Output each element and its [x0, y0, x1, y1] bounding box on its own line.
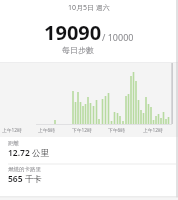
staticText: 12.72 公里 [8, 147, 50, 159]
button[interactable]: 燃燒的卡路里 [8, 166, 42, 185]
staticText: 每日步數 [62, 45, 94, 55]
staticText: 下午6時 [108, 127, 126, 134]
staticText: 距離 [8, 140, 19, 147]
staticText: 上午6時 [38, 127, 56, 134]
staticText: 下午12時 [72, 127, 92, 134]
button[interactable]: 距離 [8, 140, 50, 159]
staticText: 上午12時 [143, 127, 163, 134]
staticText: 燃燒的卡路里 [8, 166, 41, 173]
staticText: 上午12時 [2, 127, 22, 134]
staticText: / 10000 [102, 31, 134, 43]
staticText: 19090 [44, 19, 102, 46]
staticText: 565 千卡 [8, 173, 42, 185]
staticText: 10月5日 週六 [68, 3, 110, 13]
